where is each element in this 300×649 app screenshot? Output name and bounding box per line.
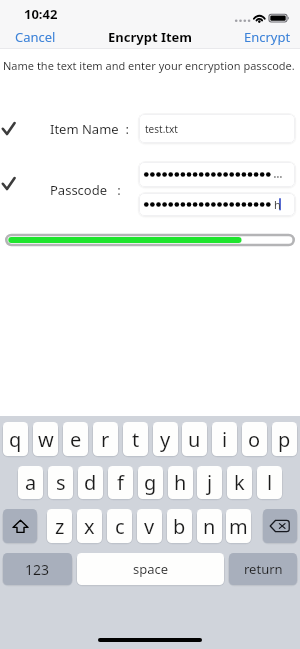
- staticText: o: [248, 426, 261, 453]
- staticText: Cancel: [15, 28, 56, 46]
- button[interactable]: j: [197, 466, 222, 499]
- staticText: t: [132, 426, 140, 453]
- button[interactable]: i: [212, 422, 237, 456]
- staticText: 123: [25, 560, 50, 579]
- staticText: g: [144, 469, 157, 496]
- button[interactable]: Return: [229, 553, 297, 585]
- staticText: Item Name :: [50, 120, 129, 138]
- staticText: b: [173, 513, 186, 540]
- button[interactable]: q: [3, 422, 28, 456]
- button[interactable]: z: [47, 509, 72, 543]
- staticText: r: [101, 426, 110, 453]
- button[interactable]: u: [182, 422, 207, 456]
- staticText: return: [244, 560, 283, 578]
- staticText: 10:42: [24, 5, 58, 23]
- staticText: z: [55, 513, 65, 540]
- staticText: p: [278, 426, 291, 453]
- button[interactable]: w: [33, 422, 58, 456]
- staticText: test.txt: [145, 122, 178, 136]
- staticText: space: [133, 560, 169, 578]
- staticText: Passcode :: [50, 181, 121, 199]
- staticText: h: [174, 469, 187, 496]
- staticText: Encrypt Item: [108, 28, 193, 46]
- button[interactable]: c: [107, 509, 132, 543]
- button[interactable]: s: [48, 466, 73, 499]
- button[interactable]: f: [108, 466, 133, 499]
- button[interactable]: space: [77, 553, 224, 585]
- button[interactable]: Numbers: [3, 553, 72, 585]
- button[interactable]: e: [63, 422, 88, 456]
- button[interactable]: Shift: [3, 509, 37, 543]
- staticText: j: [207, 469, 213, 496]
- staticText: m: [229, 513, 248, 540]
- staticText: s: [56, 469, 66, 496]
- button[interactable]: m: [226, 509, 251, 543]
- staticText: a: [25, 469, 37, 496]
- staticText: c: [115, 513, 125, 540]
- button[interactable]: x: [77, 509, 102, 543]
- staticText: e: [70, 426, 82, 453]
- button[interactable]: t: [123, 422, 148, 456]
- button[interactable]: o: [242, 422, 267, 456]
- button[interactable]: y: [153, 422, 178, 456]
- staticText: k: [234, 469, 245, 496]
- button[interactable]: l: [257, 466, 282, 499]
- staticText: h: [274, 197, 281, 212]
- staticText: Encrypt: [244, 28, 291, 46]
- button[interactable]: r: [93, 422, 118, 456]
- button[interactable]: h: [168, 466, 193, 499]
- staticText: v: [144, 513, 155, 540]
- staticText: d: [84, 469, 97, 496]
- staticText: q: [9, 426, 22, 453]
- button[interactable]: h: [139, 193, 295, 216]
- staticText: Name the text item and enter your encryp…: [3, 58, 295, 73]
- button[interactable]: Encrypt: [240, 24, 294, 49]
- staticText: u: [188, 426, 201, 453]
- button[interactable]: [139, 162, 295, 187]
- staticText: y: [160, 426, 171, 453]
- button[interactable]: k: [227, 466, 252, 499]
- button[interactable]: Backspace: [263, 509, 297, 543]
- button[interactable]: v: [137, 509, 162, 543]
- button[interactable]: p: [272, 422, 297, 456]
- staticText: w: [38, 426, 54, 453]
- staticText: x: [84, 513, 95, 540]
- button[interactable]: b: [167, 509, 192, 543]
- button[interactable]: d: [78, 466, 103, 499]
- button[interactable]: test.txt: [139, 114, 295, 143]
- button[interactable]: a: [18, 466, 43, 499]
- button[interactable]: n: [197, 509, 222, 543]
- button[interactable]: g: [138, 466, 163, 499]
- staticText: f: [117, 469, 124, 496]
- button[interactable]: Cancel: [8, 24, 62, 49]
- staticText: n: [203, 513, 216, 540]
- staticText: l: [267, 469, 273, 496]
- staticText: i: [222, 426, 228, 453]
